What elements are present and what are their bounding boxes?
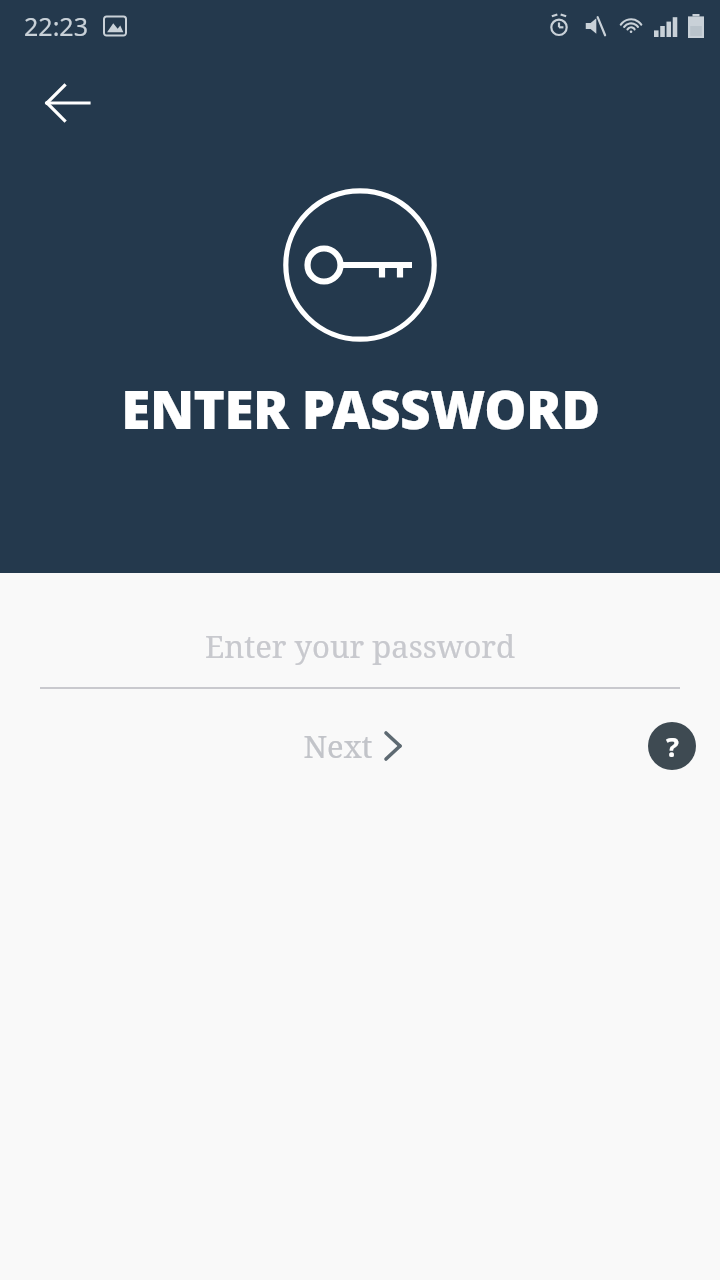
button[interactable]: Next: [293, 717, 411, 775]
button[interactable]: Back: [36, 71, 100, 135]
staticText: Next: [303, 725, 373, 767]
staticText: Enter your password: [205, 625, 515, 667]
button[interactable]: Enter your password: [40, 605, 680, 687]
button[interactable]: Help: [648, 722, 696, 770]
staticText: ENTER PASSWORD: [121, 372, 600, 444]
staticText: ?: [666, 728, 679, 765]
staticText: 22:23: [24, 9, 88, 43]
